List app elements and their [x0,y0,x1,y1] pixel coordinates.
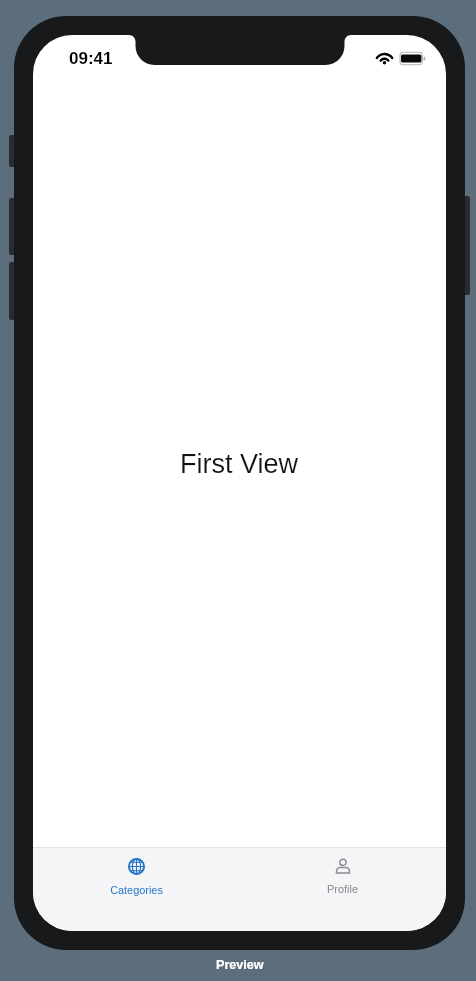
staticText: Categories [110,884,163,896]
staticText: 09:41 [69,49,113,68]
staticText: Preview [216,958,264,972]
staticText: First View [180,449,299,479]
other: Categories [128,858,145,875]
button[interactable]: Profile [239,848,446,931]
staticText: Profile [327,883,358,895]
other: Profile [335,858,351,874]
button[interactable]: Categories [33,848,239,931]
